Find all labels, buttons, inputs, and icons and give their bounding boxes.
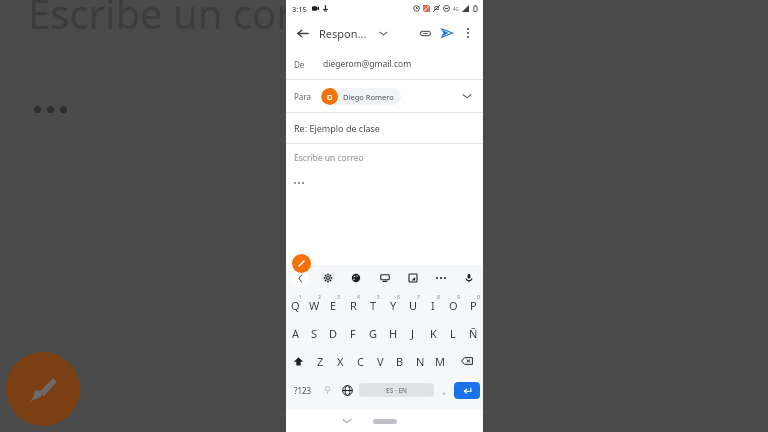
button[interactable]: Y [383,291,403,319]
button[interactable]: Change language [337,375,357,405]
staticText: 4 [357,294,360,301]
staticText: Ñ [469,326,478,341]
staticText: E [330,298,337,313]
button[interactable]: Hide keyboard [339,413,355,429]
button[interactable]: Shift [286,347,311,375]
button[interactable]: Attach [414,22,436,44]
button[interactable]: H [383,319,403,347]
staticText: Escribe un correo [294,152,364,164]
staticText: 6 [397,294,400,301]
staticText: R [350,298,357,313]
button[interactable]: E [324,291,343,319]
button[interactable]: Emoji [317,375,337,405]
staticText: Escribe un correo [28,0,356,40]
button[interactable]: W [305,291,324,319]
button[interactable]: M [430,347,450,375]
button[interactable]: Clipboard [376,269,394,287]
staticText: T [370,298,377,313]
staticText: U [409,298,418,313]
button[interactable]: A [286,319,305,347]
staticText: D [329,326,338,341]
button[interactable]: G [363,319,383,347]
staticText: 1 [299,294,302,301]
button[interactable]: Ñ [463,319,483,347]
button[interactable]: I [423,291,443,319]
button[interactable]: J [403,319,423,347]
staticText: 0 [477,294,480,301]
button[interactable]: L [443,319,463,347]
staticText: ?123 [294,385,312,396]
staticText: Para [294,91,311,102]
button[interactable]: P [463,291,483,319]
button[interactable]: More options [458,23,478,43]
staticText: P [470,298,477,313]
button[interactable]: Home [373,419,397,424]
button[interactable]: Voice input [460,269,478,287]
staticText: J [411,326,415,341]
staticText: , [443,384,446,396]
button[interactable]: De [294,49,475,79]
staticText: Diego Romero [343,92,394,102]
staticText: C [357,354,364,369]
button[interactable]: U [403,291,423,319]
other: Brush [6,352,80,426]
button[interactable]: Backspace [450,347,483,375]
staticText: S [311,326,318,341]
button[interactable]: Send [436,22,458,44]
staticText: G [369,326,378,341]
button[interactable]: Back [291,22,313,44]
staticText: 3:15 [292,4,307,14]
button[interactable]: , [434,375,454,405]
staticText: 5 [377,294,380,301]
button[interactable]: B [390,347,410,375]
button[interactable]: O [443,291,463,319]
button[interactable]: Enter [454,382,480,399]
staticText: ES · EN [386,386,407,395]
staticText: 3 [337,294,340,301]
staticText: O [449,298,458,313]
staticText: B [396,354,404,369]
button[interactable]: N [410,347,430,375]
button[interactable]: Q [286,291,305,319]
staticText: 7 [417,294,420,301]
staticText: diegerom@gmail.com [323,58,412,70]
button[interactable]: Settings [319,269,337,287]
button[interactable]: Compose [292,254,311,273]
button[interactable]: V [370,347,390,375]
button[interactable]: D [324,319,343,347]
button[interactable]: K [423,319,443,347]
staticText: V [377,354,384,369]
staticText: Z [317,354,324,369]
staticText: De [294,59,305,70]
button[interactable]: S [305,319,324,347]
staticText: X [337,354,344,369]
staticText: Re: Ejemplo de clase [294,122,380,134]
button[interactable]: Stickers [347,269,365,287]
button[interactable]: Para [294,80,475,112]
button[interactable]: ?123 [289,375,317,405]
button[interactable]: More [432,269,450,287]
staticText: N [416,354,425,369]
button[interactable]: Collapse toolbar [291,269,309,287]
button[interactable]: ES · EN [359,383,434,397]
staticText: 8 [437,294,440,301]
button[interactable]: C [350,347,370,375]
staticText: M [435,354,445,369]
staticText: A [292,326,300,341]
button[interactable]: Show Cc Bcc [459,88,475,104]
button[interactable]: Re: Ejemplo de clase [294,113,475,143]
staticText: F [350,326,356,341]
staticText: W [309,298,320,313]
staticText: Q [291,298,300,313]
staticText: D [327,92,333,102]
button[interactable]: X [330,347,350,375]
staticText: L [450,326,456,341]
button[interactable]: Z [311,347,330,375]
button[interactable]: F [343,319,363,347]
button[interactable]: R [343,291,363,319]
button[interactable]: Expand [375,25,391,41]
button[interactable]: T [363,291,383,319]
button[interactable]: One-hand mode [404,269,422,287]
staticText: 4G [453,6,459,12]
staticText: 2 [318,294,321,301]
